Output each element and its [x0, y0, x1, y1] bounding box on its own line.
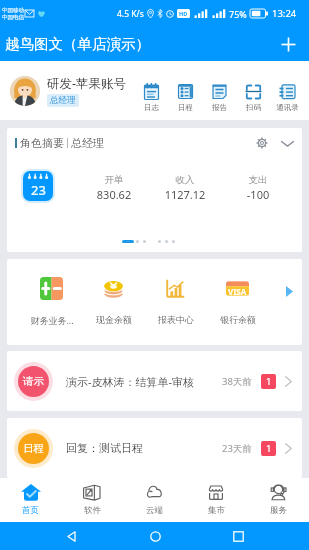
staticText: 日程 [178, 103, 193, 112]
staticText: 830.62 [84, 187, 144, 202]
button[interactable]: 财务业务... [21, 259, 82, 326]
button[interactable]: VISA [207, 259, 268, 325]
staticText: 开单 [84, 174, 144, 186]
staticText: 38天前 [222, 375, 252, 388]
staticText: 集市 [208, 505, 225, 516]
staticText: 日志 [144, 103, 159, 112]
staticText: 财务业务... [30, 314, 74, 326]
staticText: HD [179, 10, 188, 17]
staticText: 1 [266, 375, 272, 388]
button[interactable]: Back [58, 523, 84, 549]
staticText: 软件 [84, 505, 101, 516]
staticText: 回复：测试日程 [66, 441, 143, 455]
button[interactable]: 日程 [168, 70, 202, 112]
staticText: 请示 [23, 375, 44, 388]
button[interactable]: 云端 [123, 478, 185, 522]
staticText: VISA [228, 286, 247, 297]
staticText: 中国移动 [2, 7, 24, 14]
button[interactable]: 日志 [134, 70, 168, 112]
button[interactable]: 请示 [7, 351, 302, 411]
staticText: 银行余额 [220, 314, 256, 325]
staticText: 13:24 [272, 7, 297, 20]
button[interactable]: 软件 [61, 478, 123, 522]
staticText: 总经理 [50, 95, 76, 106]
staticText: 总经理 [71, 136, 104, 150]
button[interactable]: 首页 [0, 478, 61, 522]
button[interactable]: Recents [225, 523, 251, 549]
staticText: 1127.12 [155, 187, 215, 202]
staticText: 角色摘要 [20, 136, 64, 150]
staticText: 现金余额 [96, 314, 132, 325]
staticText: 云端 [146, 505, 163, 516]
button[interactable]: 日程 [7, 418, 302, 478]
staticText: 日程 [23, 442, 44, 455]
button[interactable]: Add [275, 31, 301, 57]
button[interactable]: 集市 [185, 478, 247, 522]
staticText: 服务 [270, 505, 287, 516]
staticText: 支出 [228, 174, 288, 186]
staticText: 收入 [155, 174, 215, 186]
staticText: 75% [229, 8, 247, 20]
staticText: 23天前 [222, 442, 252, 455]
staticText: 中国电信 [2, 14, 24, 21]
button[interactable]: Settings [252, 133, 272, 153]
staticText: 研发-苹果账号 [47, 75, 127, 92]
button[interactable]: 现金余额 [83, 259, 144, 325]
staticText: 1 [266, 442, 272, 455]
staticText: -100 [228, 187, 288, 202]
button[interactable]: 扫码 [236, 70, 270, 112]
button[interactable]: 通讯录 [270, 70, 304, 112]
staticText: 报告 [212, 103, 227, 112]
staticText: 演示-皮林涛：结算单-审核 [66, 374, 195, 389]
staticText: 扫码 [246, 103, 261, 112]
button[interactable]: Expand [277, 133, 297, 153]
staticText: 越鸟图文（单店演示） [5, 35, 150, 53]
staticText: 报表中心 [158, 314, 194, 325]
staticText: 23 [31, 181, 46, 199]
staticText: 4.5 K/s [117, 8, 144, 20]
button[interactable]: 报表中心 [145, 259, 206, 325]
staticText: 首页 [22, 505, 39, 516]
staticText: 通讯录 [276, 103, 299, 112]
button[interactable]: 报告 [202, 70, 236, 112]
button[interactable]: Home [142, 523, 168, 549]
button[interactable]: 服务 [247, 478, 309, 522]
